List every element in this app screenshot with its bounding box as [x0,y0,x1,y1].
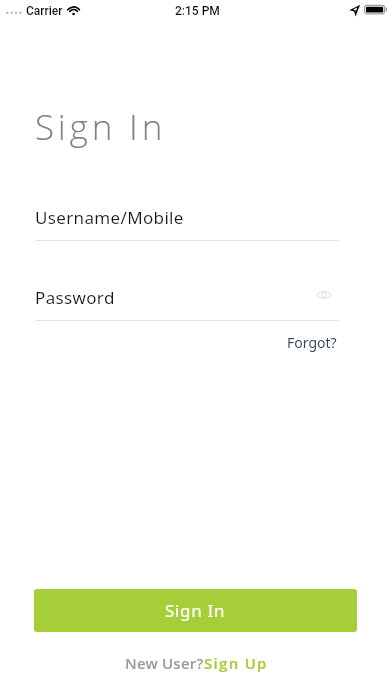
staticText: Sign In [165,599,226,622]
button[interactable]: Username/Mobile [35,206,339,241]
staticText: Password [35,286,115,309]
staticText: Sign Up [204,653,268,673]
button[interactable]: Show password [310,281,338,309]
staticText: Carrier [26,4,63,18]
staticText: New User? [125,653,204,673]
button[interactable]: Sign Up [204,653,268,673]
staticText: 2:15 PM [175,4,220,18]
staticText: Username/Mobile [35,206,184,229]
button[interactable]: Sign In [34,589,357,632]
staticText: Forgot? [287,333,337,352]
button[interactable]: Forgot? [281,328,343,357]
button[interactable]: Password [35,286,339,321]
staticText: Sign In [35,103,167,151]
